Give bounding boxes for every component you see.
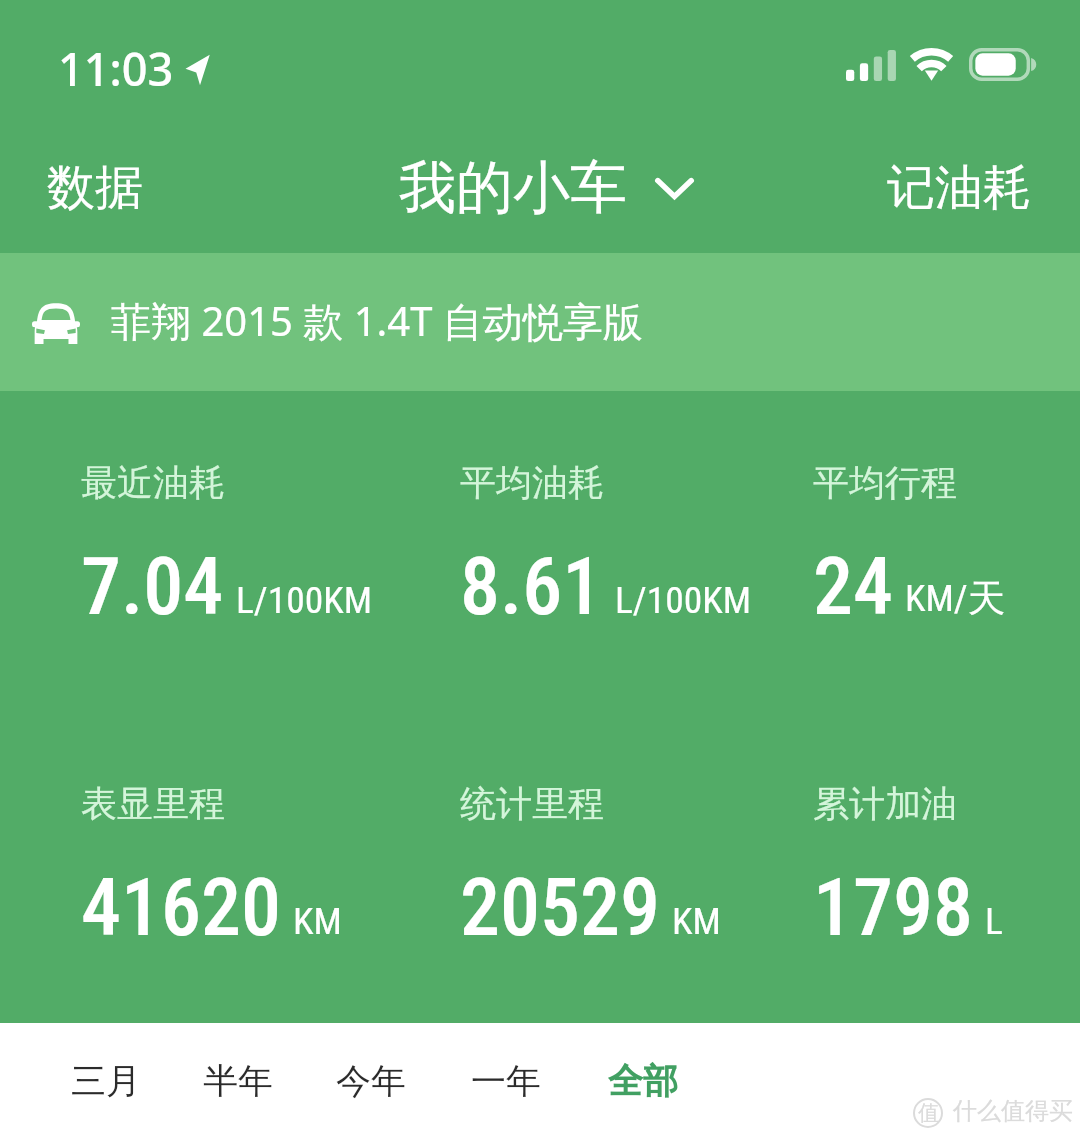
staticText: 一年: [471, 1059, 541, 1103]
button[interactable]: 三月: [45, 1040, 167, 1122]
button[interactable]: 一年: [445, 1040, 567, 1122]
button[interactable]: 全部: [581, 1040, 705, 1122]
staticText: 7.04: [81, 540, 224, 634]
staticText: 今年: [336, 1059, 406, 1103]
button[interactable]: 数据: [10, 140, 180, 236]
staticText: 表显里程: [81, 781, 225, 826]
staticText: KM/天: [905, 575, 1006, 622]
staticText: L/100KM: [236, 578, 373, 622]
staticText: 半年: [203, 1059, 273, 1103]
staticText: 平均行程: [813, 460, 957, 505]
staticText: 8.61: [460, 540, 603, 634]
staticText: L/100KM: [615, 578, 752, 622]
staticText: 三月: [71, 1059, 141, 1103]
staticText: 累计加油: [813, 781, 957, 826]
staticText: KM: [672, 899, 721, 943]
staticText: 1798: [813, 861, 973, 955]
staticText: 统计里程: [460, 781, 604, 826]
button[interactable]: 菲翔 2015 款 1.4T 自动悦享版: [0, 253, 1080, 391]
button[interactable]: 我的小车: [389, 140, 708, 236]
staticText: 菲翔 2015 款 1.4T 自动悦享版: [111, 293, 643, 348]
staticText: 41620: [81, 861, 281, 955]
button[interactable]: 今年: [310, 1040, 432, 1122]
staticText: L: [985, 899, 1003, 943]
staticText: 我的小车: [399, 152, 627, 224]
staticText: 最近油耗: [81, 460, 225, 505]
staticText: 20529: [460, 861, 660, 955]
staticText: 全部: [608, 1059, 678, 1103]
staticText: 值: [918, 1100, 939, 1126]
staticText: 平均油耗: [460, 460, 604, 505]
staticText: 11:03: [58, 38, 174, 99]
button[interactable]: 半年: [177, 1040, 299, 1122]
staticText: 什么值得买: [953, 1096, 1073, 1126]
staticText: KM: [293, 899, 342, 943]
staticText: 记油耗: [887, 158, 1031, 218]
staticText: 24: [813, 540, 893, 634]
staticText: 数据: [47, 158, 143, 218]
button[interactable]: 记油耗: [849, 140, 1069, 236]
